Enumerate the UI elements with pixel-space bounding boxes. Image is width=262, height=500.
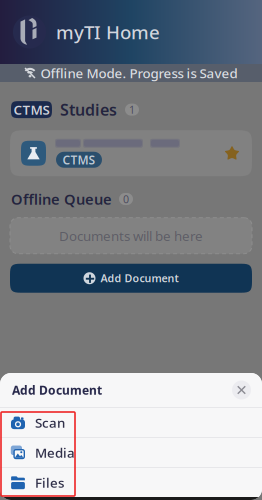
staticText: Media [35, 444, 75, 461]
staticText: Studies [60, 99, 117, 120]
button[interactable]: Add Document [10, 264, 252, 293]
staticText: Offline Mode. Progress is Saved [40, 64, 237, 82]
staticText: Offline Queue [11, 189, 112, 209]
button[interactable]: CTMS [10, 130, 252, 176]
staticText: Documents will be here [59, 227, 203, 245]
button[interactable]: Close [232, 380, 251, 399]
button[interactable]: Scan [0, 408, 262, 437]
staticText: 0 [123, 192, 129, 206]
staticText: Add Document [12, 382, 102, 398]
staticText: CTMS [62, 152, 95, 168]
staticText: Scan [35, 414, 65, 431]
staticText: Files [35, 474, 64, 491]
staticText: Add Document [100, 271, 178, 285]
staticText: 1 [129, 102, 135, 117]
staticText: CTMS [13, 101, 49, 118]
button[interactable]: Files [0, 468, 262, 497]
button[interactable]: Media [0, 438, 262, 467]
staticText: myTI Home [56, 20, 160, 44]
